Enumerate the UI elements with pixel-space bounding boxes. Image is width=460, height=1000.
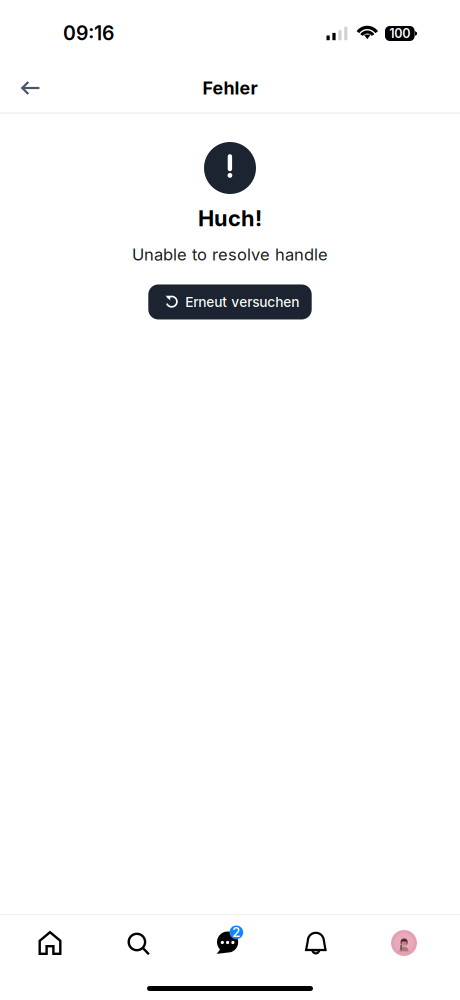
staticText: 2 <box>232 925 240 940</box>
button[interactable]: Erneut versuchen <box>148 284 312 319</box>
staticText: Unable to resolve handle <box>132 244 328 264</box>
button[interactable]: Home <box>16 917 84 969</box>
button[interactable]: Search <box>105 918 173 970</box>
button[interactable]: Chat, 2 unread <box>193 916 261 968</box>
staticText: Erneut versuchen <box>185 294 299 310</box>
staticText: 09:16 <box>63 21 114 45</box>
button[interactable]: Back <box>0 64 57 112</box>
staticText: Huch! <box>198 205 262 231</box>
button[interactable]: Notifications <box>282 916 350 968</box>
button[interactable]: Profile <box>370 917 438 969</box>
staticText: 100 <box>389 26 410 41</box>
staticText: Fehler <box>202 77 257 99</box>
